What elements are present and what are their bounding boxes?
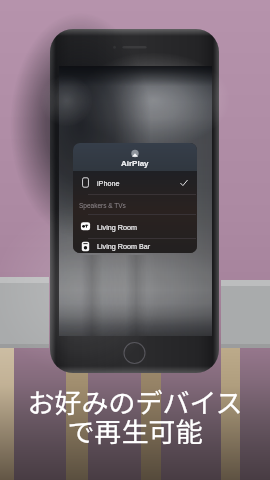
button[interactable]: Living Room Bar [73,239,197,253]
button[interactable]: Home [123,342,146,365]
staticText: iPhone [97,179,120,187]
staticText: Living Room [97,223,137,231]
staticText: お好みのデバイス で再生可能 [0,382,270,450]
button[interactable]: iPhone [73,171,197,194]
staticText: Living Room Bar [97,242,151,250]
button[interactable]: Living Room [73,215,197,238]
staticText: Speakers & TVs [79,202,126,209]
staticText: AirPlay [121,159,149,168]
